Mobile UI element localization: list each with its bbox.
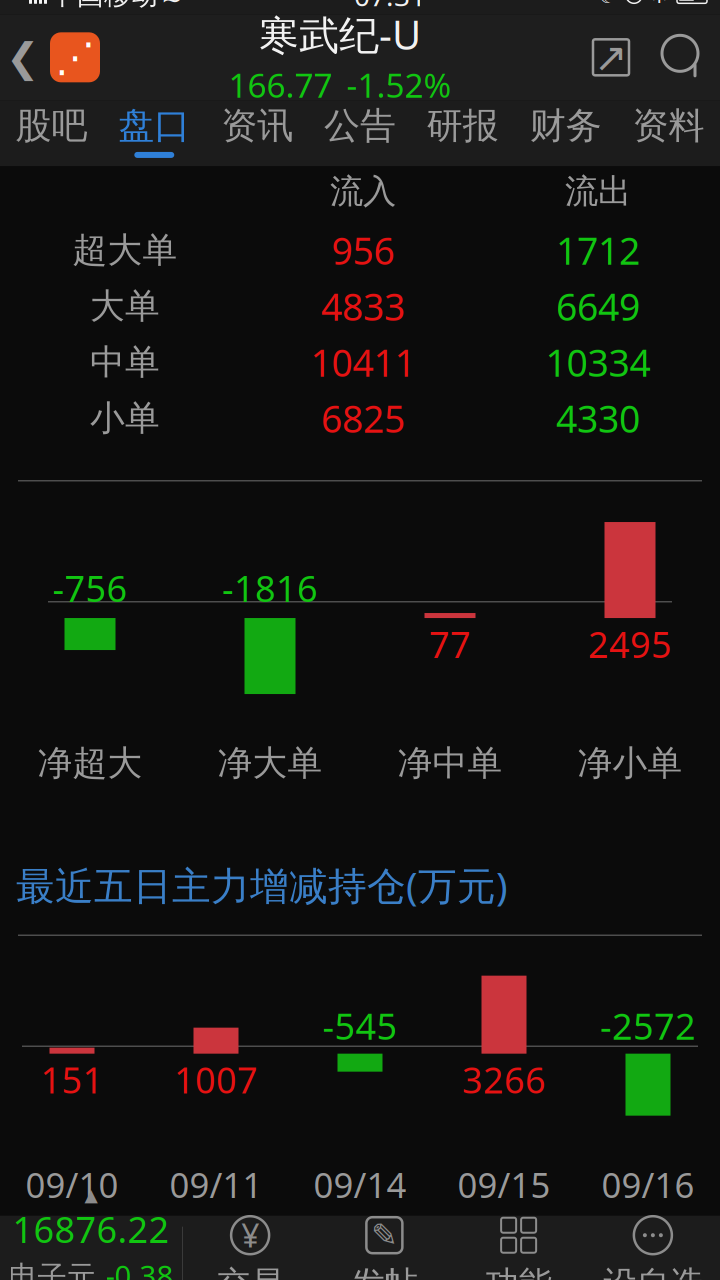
- staticText: 设自选: [603, 1263, 702, 1280]
- button[interactable]: Back: [0, 14, 46, 100]
- staticText: ▲: [84, 1185, 97, 1205]
- staticText: 151: [40, 1056, 103, 1103]
- staticText: 流出: [565, 171, 631, 212]
- staticText: -2572: [600, 1002, 696, 1050]
- button[interactable]: 研报: [411, 100, 514, 166]
- button[interactable]: Home: [46, 14, 104, 100]
- button[interactable]: Search: [646, 14, 720, 100]
- staticText: -545: [322, 1002, 397, 1050]
- staticText: 小单: [90, 397, 160, 440]
- staticText: -756: [52, 564, 127, 612]
- staticText: 财务: [530, 104, 602, 148]
- staticText: 净中单: [397, 742, 502, 785]
- staticText: 交易: [217, 1263, 283, 1280]
- staticText: 发帖: [351, 1263, 417, 1280]
- staticText: 股吧: [15, 104, 87, 148]
- staticText: ✎: [371, 1217, 398, 1253]
- staticText: 10411: [310, 337, 415, 387]
- staticText: 流入: [330, 171, 396, 212]
- staticText: 4833: [321, 281, 405, 331]
- staticText: 3266: [462, 1056, 546, 1103]
- staticText: 净超大: [37, 742, 142, 785]
- staticText: ∗: [650, 0, 669, 8]
- button[interactable]: ▲: [0, 1216, 182, 1280]
- staticText: 956: [331, 225, 394, 275]
- staticText: 最近五日主力增减持仓(万元): [16, 859, 508, 911]
- staticText: 16876.22: [12, 1205, 169, 1253]
- staticText: ⋰: [55, 35, 95, 80]
- staticText: 6825: [321, 393, 405, 443]
- staticText: 寒武纪-U: [259, 8, 421, 61]
- staticText: 电子元件: [8, 1259, 95, 1280]
- staticText: 10334: [545, 337, 650, 387]
- staticText: 大单: [90, 285, 160, 328]
- staticText: ¥: [241, 1214, 259, 1256]
- button[interactable]: 功能: [451, 1216, 586, 1280]
- staticText: 盘口: [118, 104, 190, 148]
- staticText: 07:31: [354, 0, 426, 14]
- staticText: 1007: [174, 1056, 258, 1103]
- button[interactable]: Share: [576, 14, 646, 100]
- staticText: 09/11: [169, 1162, 262, 1208]
- staticText: 1712: [556, 225, 640, 275]
- staticText: 净大单: [217, 742, 322, 785]
- staticText: 研报: [427, 104, 499, 148]
- staticText: 6649: [556, 281, 640, 331]
- button[interactable]: 盘口: [103, 100, 206, 166]
- staticText: 资讯: [221, 104, 293, 148]
- button[interactable]: 公告: [309, 100, 411, 166]
- button[interactable]: ¥: [183, 1216, 317, 1280]
- staticText: ↗: [594, 35, 628, 80]
- staticText: 2495: [588, 620, 672, 668]
- staticText: -1816: [222, 564, 318, 612]
- staticText: 166.77: [228, 63, 332, 107]
- staticText: 功能: [486, 1263, 552, 1280]
- staticText: -1.52%: [346, 63, 451, 107]
- staticText: 77: [429, 620, 471, 668]
- staticText: 09/10: [25, 1162, 118, 1208]
- staticText: ❮: [6, 35, 40, 80]
- staticText: 中国移动: [50, 0, 158, 12]
- staticText: ☾: [598, 0, 618, 8]
- button[interactable]: 资讯: [206, 100, 309, 166]
- button[interactable]: 股吧: [0, 100, 103, 166]
- staticText: 09/16: [601, 1162, 694, 1208]
- staticText: 中单: [90, 341, 160, 384]
- staticText: 09/15: [457, 1162, 550, 1208]
- button[interactable]: 资料: [617, 100, 720, 166]
- staticText: 公告: [324, 104, 396, 148]
- button[interactable]: 设自选: [586, 1216, 720, 1280]
- staticText: 4330: [556, 393, 640, 443]
- button[interactable]: 财务: [514, 100, 617, 166]
- button[interactable]: ✎: [317, 1216, 451, 1280]
- staticText: 09/14: [313, 1162, 406, 1208]
- staticText: 净小单: [577, 742, 682, 785]
- staticText: -0.38%: [105, 1256, 173, 1280]
- staticText: ≋: [161, 0, 182, 10]
- staticText: 超大单: [72, 229, 177, 272]
- staticText: 资料: [633, 104, 705, 148]
